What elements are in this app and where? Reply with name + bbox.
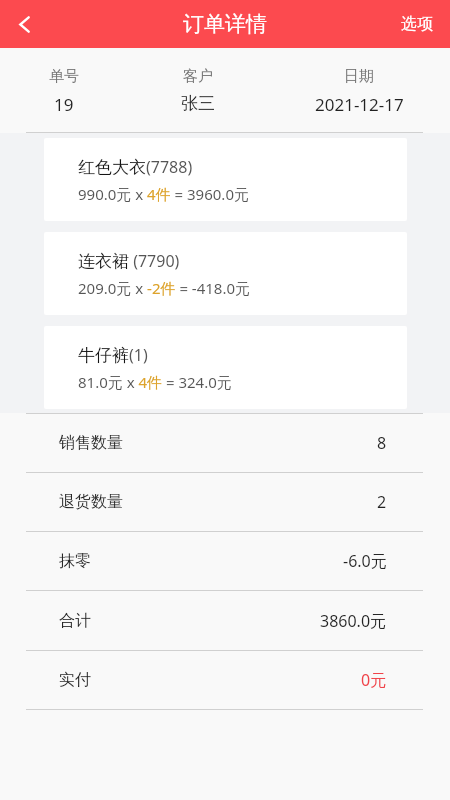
staticText: 连衣裙 (7790) [78,250,180,272]
button[interactable]: 退货数量 [0,473,450,531]
staticText: 3860.0元 [320,610,387,632]
button[interactable]: 选项 [387,0,450,48]
staticText: 单号 [49,67,79,86]
staticText: 0元 [361,669,387,691]
staticText: 19 [54,93,74,116]
staticText: 抹零 [59,551,91,571]
button[interactable]: 合计 [0,591,450,650]
staticText: 客户 [183,67,213,86]
button[interactable]: 红色大衣(7788) [44,138,407,221]
button[interactable]: 销售数量 [0,414,450,472]
button[interactable]: 连衣裙 (7790) [44,232,407,315]
staticText: 合计 [59,611,91,631]
staticText: 实付 [59,670,91,690]
button[interactable]: 牛仔裤(1) [44,326,407,409]
staticText: 销售数量 [59,433,123,453]
button[interactable]: 抹零 [0,532,450,590]
staticText: 2021-12-17 [315,93,404,116]
button[interactable]: Back [0,0,49,48]
staticText: 订单详情 [183,11,267,37]
staticText: 红色大衣(7788) [78,156,193,178]
button[interactable]: 实付 [0,651,450,709]
staticText: -6.0元 [343,550,387,572]
staticText: 209.0元 x -2件 = -418.0元 [78,278,251,298]
staticText: 990.0元 x 4件 = 3960.0元 [78,184,249,204]
staticText: 退货数量 [59,492,123,512]
staticText: 2 [377,491,387,513]
staticText: 张三 [181,93,215,114]
staticText: 选项 [401,14,433,34]
staticText: 8 [377,432,387,454]
staticText: 81.0元 x 4件 = 324.0元 [78,372,232,392]
staticText: 牛仔裤(1) [78,344,148,366]
staticText: 日期 [344,67,374,86]
